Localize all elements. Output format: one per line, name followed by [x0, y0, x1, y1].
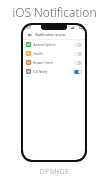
- button[interactable]: Back: [26, 31, 33, 38]
- staticText: iOS Notification: [12, 4, 97, 20]
- staticText: 9:41: [26, 26, 32, 30]
- staticText: Notification access: [35, 32, 66, 37]
- staticText: Health: [33, 52, 43, 56]
- button[interactable]: Android System: [23, 40, 85, 49]
- button[interactable]: iOS Notify: [23, 67, 85, 76]
- button[interactable]: Health: [23, 49, 85, 58]
- button[interactable]: Huawei Home: [23, 58, 85, 67]
- button[interactable]: Toggle off: [74, 52, 82, 56]
- button[interactable]: Toggle off: [74, 43, 82, 47]
- staticText: DPMJGE: [39, 167, 70, 177]
- button[interactable]: Toggle on: [74, 70, 82, 74]
- staticText: iOS Notify: [33, 70, 48, 74]
- button[interactable]: Toggle off: [74, 61, 82, 65]
- staticText: Huawei Home: [33, 61, 53, 65]
- staticText: Android System: [33, 43, 56, 47]
